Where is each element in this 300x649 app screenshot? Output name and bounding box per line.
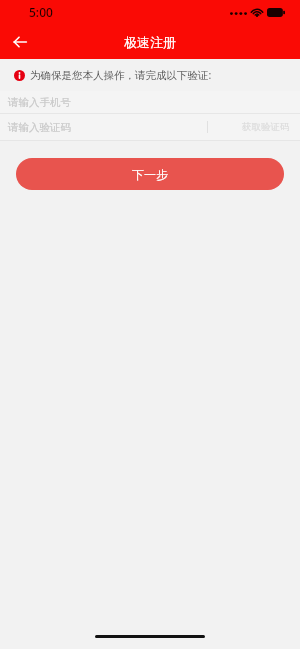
staticText: 获取验证码 <box>242 121 290 133</box>
staticText: 请输入手机号 <box>8 96 71 109</box>
button[interactable]: 下一步 <box>16 158 284 190</box>
button[interactable]: 获取验证码 <box>242 121 290 133</box>
staticText: 极速注册 <box>124 34 176 50</box>
staticText: 下一步 <box>132 167 168 182</box>
staticText: 5:00 <box>29 4 53 20</box>
button[interactable]: 请输入手机号 <box>0 91 300 113</box>
staticText: 为确保是您本人操作，请完成以下验证: <box>30 68 212 82</box>
button[interactable]: 请输入验证码 <box>8 121 71 134</box>
button[interactable]: Back <box>0 24 40 59</box>
